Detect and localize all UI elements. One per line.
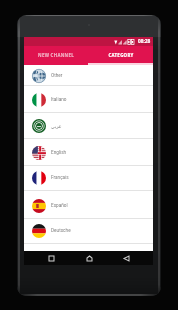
staticText: Italiano	[51, 97, 67, 103]
button[interactable]: Italiano	[24, 86, 153, 113]
button[interactable]: Español	[24, 192, 153, 219]
button[interactable]: NEW CHANNEL	[24, 46, 88, 65]
staticText: Français	[51, 175, 69, 181]
staticText: Other	[51, 73, 63, 79]
staticText: 08:28	[138, 38, 151, 45]
button[interactable]: Recents	[40, 251, 62, 265]
button[interactable]: Home	[78, 251, 100, 265]
staticText: عربي	[51, 124, 62, 129]
staticText: NEW CHANNEL	[38, 52, 74, 58]
staticText: Deutsche	[51, 228, 71, 234]
button[interactable]: عربي	[24, 113, 153, 139]
button[interactable]: English	[24, 139, 153, 166]
button[interactable]: CATEGORY	[88, 46, 153, 65]
button[interactable]: Français	[24, 165, 153, 191]
staticText: English	[51, 150, 67, 156]
button[interactable]: Back	[115, 251, 137, 265]
button[interactable]: Other	[24, 65, 153, 86]
staticText: Español	[51, 203, 68, 209]
staticText: CATEGORY	[108, 52, 134, 58]
button[interactable]: Deutsche	[24, 218, 153, 244]
